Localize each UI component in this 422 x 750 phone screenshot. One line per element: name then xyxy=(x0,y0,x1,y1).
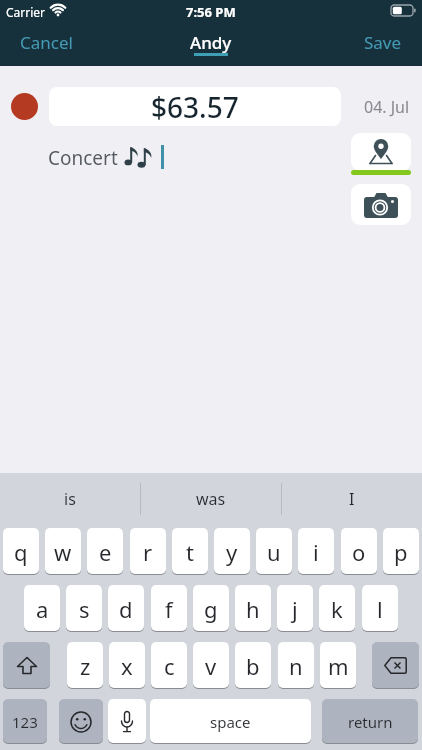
staticText: m xyxy=(328,651,349,681)
button[interactable] xyxy=(351,184,411,225)
button[interactable]: q xyxy=(3,528,39,575)
button[interactable]: Cancel xyxy=(20,31,73,54)
button[interactable]: $63.57 xyxy=(49,87,341,126)
staticText: u xyxy=(267,537,281,567)
staticText: i xyxy=(313,537,319,567)
button[interactable]: j xyxy=(277,585,313,632)
staticText: Cancel xyxy=(20,31,73,54)
button[interactable] xyxy=(108,699,146,744)
staticText: k xyxy=(331,594,343,624)
staticText: c xyxy=(164,651,175,681)
staticText: return xyxy=(348,712,393,732)
button[interactable]: l xyxy=(362,585,398,632)
staticText: x xyxy=(121,651,133,681)
staticText: q xyxy=(14,537,28,567)
button[interactable]: return xyxy=(322,699,418,744)
staticText: w xyxy=(54,537,72,567)
button[interactable] xyxy=(372,642,419,689)
staticText: t xyxy=(186,537,194,567)
staticText: n xyxy=(289,651,303,681)
button[interactable]: z xyxy=(67,642,103,689)
button[interactable]: t xyxy=(172,528,208,575)
button[interactable]: b xyxy=(235,642,271,689)
button[interactable]: i xyxy=(298,528,334,575)
button[interactable]: o xyxy=(341,528,377,575)
button[interactable] xyxy=(351,133,411,175)
button[interactable]: u xyxy=(256,528,292,575)
button[interactable]: p xyxy=(383,528,419,575)
staticText: p xyxy=(394,537,408,567)
staticText: o xyxy=(352,537,366,567)
staticText: y xyxy=(226,537,238,567)
staticText: space xyxy=(210,712,251,732)
button[interactable]: I xyxy=(282,473,422,525)
button[interactable]: g xyxy=(193,585,229,632)
button[interactable]: n xyxy=(278,642,314,689)
button[interactable]: f xyxy=(151,585,187,632)
staticText: v xyxy=(205,651,217,681)
button[interactable] xyxy=(3,642,50,689)
button[interactable]: c xyxy=(151,642,187,689)
staticText: 04. Jul xyxy=(364,96,410,118)
staticText: s xyxy=(79,594,90,624)
button[interactable]: k xyxy=(319,585,355,632)
staticText: r xyxy=(143,537,153,567)
staticText: Carrier xyxy=(6,4,46,20)
button[interactable]: 123 xyxy=(3,699,47,744)
staticText: d xyxy=(119,594,133,624)
button[interactable]: r xyxy=(130,528,166,575)
staticText: was xyxy=(196,488,226,510)
staticText: 123 xyxy=(12,712,38,732)
button[interactable]: e xyxy=(87,528,123,575)
staticText: b xyxy=(246,651,260,681)
button[interactable] xyxy=(59,699,103,744)
button[interactable]: w xyxy=(45,528,81,575)
button[interactable]: d xyxy=(108,585,144,632)
button[interactable]: a xyxy=(24,585,60,632)
button[interactable]: x xyxy=(109,642,145,689)
button[interactable]: was xyxy=(141,473,281,525)
button[interactable]: s xyxy=(66,585,102,632)
staticText: e xyxy=(99,537,112,567)
staticText: g xyxy=(204,594,218,624)
staticText: Save xyxy=(364,31,402,54)
staticText: Concert xyxy=(48,145,118,171)
staticText: h xyxy=(246,594,260,624)
staticText: is xyxy=(64,488,76,510)
button[interactable]: Save xyxy=(364,31,402,54)
button[interactable]: y xyxy=(214,528,250,575)
button[interactable]: h xyxy=(235,585,271,632)
staticText: l xyxy=(377,594,383,624)
staticText: f xyxy=(165,594,173,624)
staticText: I xyxy=(349,488,355,510)
staticText: a xyxy=(36,594,49,624)
staticText: j xyxy=(292,594,298,624)
button[interactable]: is xyxy=(0,473,140,525)
staticText: $63.57 xyxy=(151,88,239,126)
button[interactable]: space xyxy=(150,699,311,744)
staticText: Andy xyxy=(190,31,232,54)
staticText: 7:56 PM xyxy=(186,3,236,21)
staticText: z xyxy=(80,651,91,681)
button[interactable]: m xyxy=(320,642,356,689)
button[interactable]: v xyxy=(193,642,229,689)
